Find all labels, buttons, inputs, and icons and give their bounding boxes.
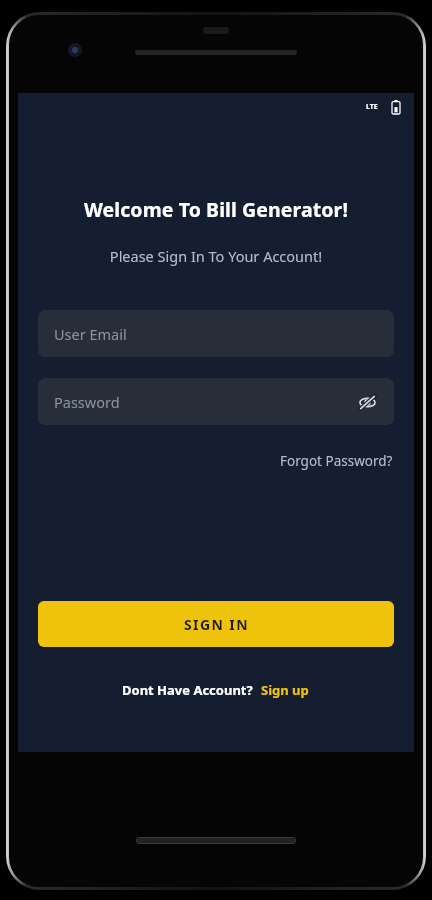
staticText: User Email xyxy=(54,324,127,344)
button[interactable]: Sign up xyxy=(259,679,311,701)
button[interactable]: Password xyxy=(38,378,394,425)
button[interactable]: Forgot Password? xyxy=(277,449,396,473)
staticText: SIGN IN xyxy=(184,615,249,634)
staticText: Sign up xyxy=(261,681,309,699)
staticText: LTE xyxy=(366,102,378,112)
staticText: Forgot Password? xyxy=(280,452,393,470)
staticText: Dont Have Account? xyxy=(122,681,253,699)
button[interactable]: SIGN IN xyxy=(38,601,394,647)
button[interactable]: Show password xyxy=(352,387,382,417)
staticText: Please Sign In To Your Account! xyxy=(18,246,414,266)
staticText: Password xyxy=(54,392,120,412)
staticText: Welcome To Bill Generator! xyxy=(18,196,414,223)
button[interactable]: User Email xyxy=(38,310,394,357)
